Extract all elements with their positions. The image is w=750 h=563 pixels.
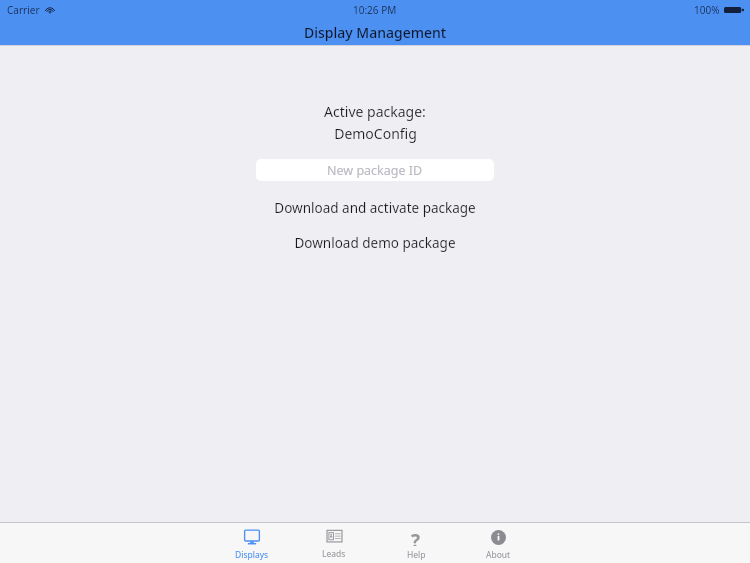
staticText: Displays xyxy=(235,549,269,561)
staticText: ? xyxy=(411,528,421,546)
button[interactable]: Download demo package xyxy=(0,232,750,254)
staticText: Help xyxy=(407,549,426,561)
staticText: Download and activate package xyxy=(274,199,476,217)
staticText: 10:26 PM xyxy=(353,3,397,17)
staticText: Active package: xyxy=(324,102,426,121)
staticText: About xyxy=(486,549,511,561)
button[interactable]: Download and activate package xyxy=(0,197,750,219)
button[interactable]: New package ID xyxy=(256,159,494,181)
staticText: Carrier xyxy=(7,3,40,17)
button[interactable]: ? xyxy=(379,525,453,561)
staticText: Display Management xyxy=(304,23,447,42)
staticText: DemoConfig xyxy=(334,124,417,143)
button[interactable]: About xyxy=(461,525,535,561)
staticText: Leads xyxy=(322,548,346,560)
staticText: 100% xyxy=(694,3,720,17)
staticText: Download demo package xyxy=(294,234,456,252)
staticText: New package ID xyxy=(327,162,423,179)
button[interactable]: Displays xyxy=(215,525,289,561)
button[interactable]: Leads xyxy=(297,525,371,560)
